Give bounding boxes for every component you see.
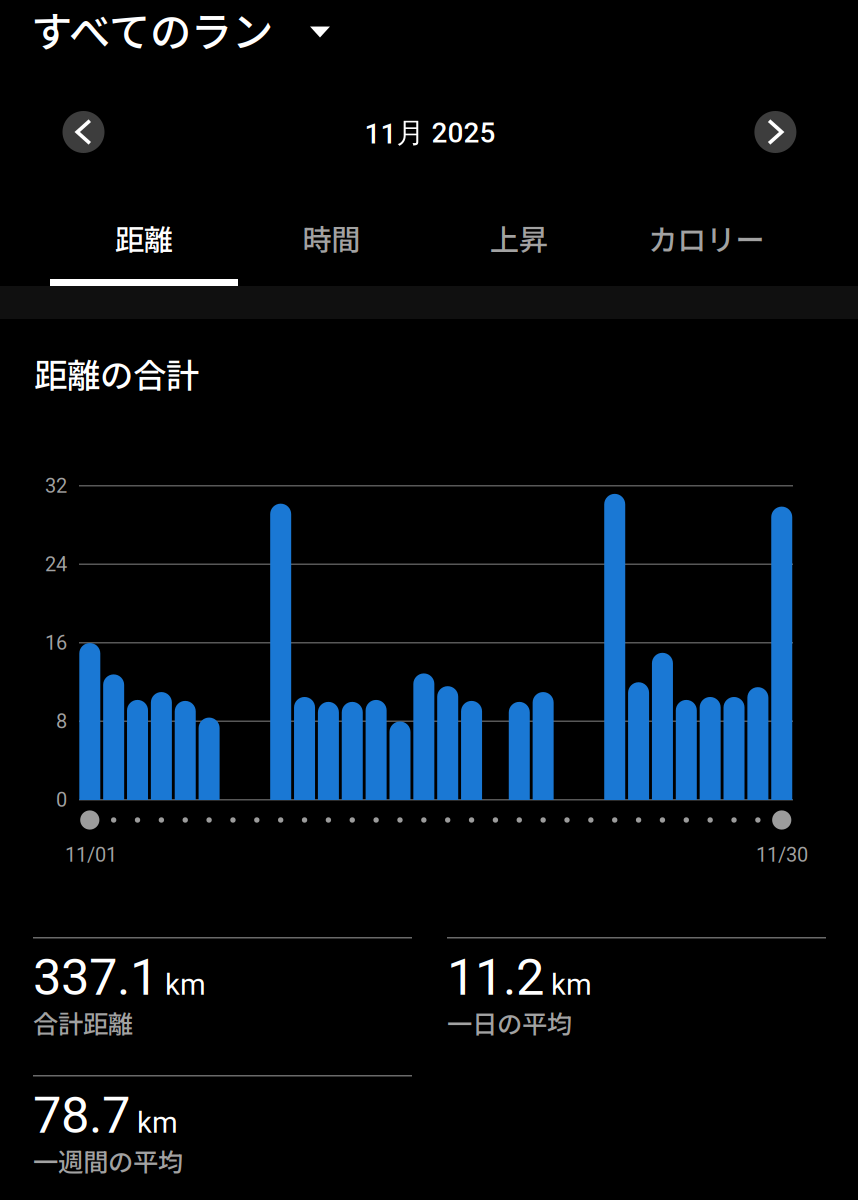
staticText: 時間 [302,217,360,259]
staticText: 距離の合計 [34,349,199,397]
staticText: km [165,967,206,1002]
staticText: 11.2 [447,948,544,1007]
staticText: 16 [45,631,67,655]
staticText: 上昇 [490,217,548,259]
staticText: 11月 [364,115,424,151]
staticText: 一週間の平均 [33,1142,183,1179]
button[interactable]: カロリー [612,200,800,276]
staticText: 合計距離 [33,1004,133,1041]
staticText: すべてのラン [31,0,273,59]
staticText: 337.1 [33,948,158,1007]
staticText: km [551,967,592,1002]
button[interactable]: Previous month [62,111,104,153]
button[interactable]: 上昇 [425,200,612,276]
staticText: 2025 [424,117,495,149]
staticText: カロリー [648,217,764,259]
staticText: 一日の平均 [447,1004,572,1041]
button[interactable]: Next month [754,111,796,153]
button[interactable]: 時間 [237,200,425,276]
staticText: 11/01 [65,843,117,867]
staticText: 0 [56,788,67,812]
staticText: km [137,1105,178,1140]
staticText: 11/30 [756,843,808,867]
staticText: 24 [45,553,67,576]
button[interactable]: すべてのラン [31,2,411,56]
staticText: 32 [45,474,67,498]
staticText: 距離 [115,217,173,259]
staticText: 8 [56,710,67,733]
staticText: 78.7 [33,1086,130,1145]
button[interactable]: 距離 [50,200,237,276]
